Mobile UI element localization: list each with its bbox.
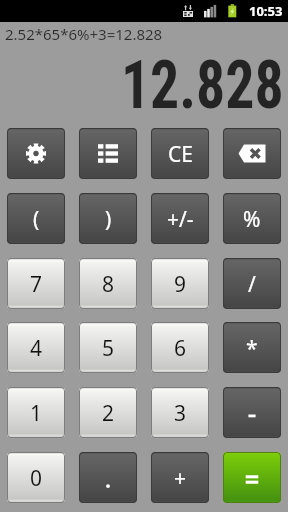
staticText: 9 [174, 270, 187, 299]
staticText: 10:53 [249, 2, 283, 20]
button[interactable]: 8 [79, 258, 137, 309]
staticText: / [248, 270, 256, 299]
button[interactable]: CE [151, 128, 209, 179]
staticText: +/- [167, 205, 194, 234]
button[interactable]: Minus [223, 387, 281, 438]
button[interactable]: 5 [79, 322, 137, 373]
staticText: ( [33, 205, 40, 234]
button[interactable]: ( [7, 193, 65, 244]
staticText: ) [105, 205, 112, 234]
staticText: 3 [174, 399, 187, 428]
button[interactable]: ) [79, 193, 137, 244]
staticText: % [243, 205, 261, 234]
staticText: CE [168, 140, 193, 169]
button[interactable]: +/- [151, 193, 209, 244]
staticText: 2 [102, 399, 115, 428]
staticText: 4 [30, 334, 43, 363]
button[interactable]: 4 [7, 322, 65, 373]
staticText: 7 [30, 270, 43, 299]
staticText: 2.52*65*6%+3=12.828 [5, 24, 163, 44]
button[interactable]: Settings [7, 128, 65, 179]
staticText: 0 [30, 464, 43, 493]
button[interactable]: History [79, 128, 137, 179]
button[interactable]: Equals [223, 452, 281, 503]
button[interactable]: 2 [79, 387, 137, 438]
button[interactable]: Backspace [223, 128, 281, 179]
button[interactable]: 7 [7, 258, 65, 309]
staticText: 1 [30, 399, 43, 428]
staticText: + [174, 464, 187, 493]
button[interactable]: % [223, 193, 281, 244]
button[interactable]: 9 [151, 258, 209, 309]
staticText: 6 [174, 334, 187, 363]
button[interactable]: Decimal point [79, 452, 137, 503]
staticText: 12.828 [36, 47, 284, 124]
staticText: * [246, 334, 258, 363]
button[interactable]: / [223, 258, 281, 309]
staticText: 5 [102, 334, 115, 363]
staticText: 8 [102, 270, 115, 299]
button[interactable]: + [151, 452, 209, 503]
button[interactable]: 6 [151, 322, 209, 373]
button[interactable]: 1 [7, 387, 65, 438]
button[interactable]: 0 [7, 452, 65, 503]
button[interactable]: 3 [151, 387, 209, 438]
button[interactable]: * [223, 322, 281, 373]
